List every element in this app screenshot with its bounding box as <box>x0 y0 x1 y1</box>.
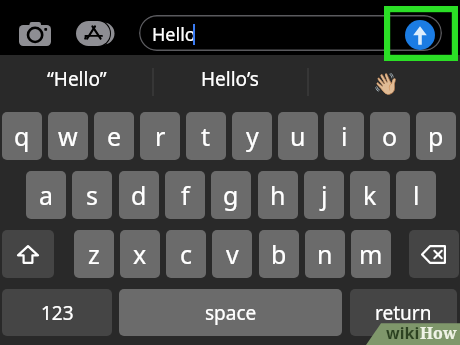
staticText: wiki <box>386 322 420 344</box>
staticText: b <box>271 237 287 271</box>
staticText: space <box>205 300 257 326</box>
button[interactable]: o <box>370 112 410 160</box>
staticText: return <box>375 300 432 326</box>
button[interactable]: App Store <box>72 18 119 49</box>
button[interactable]: d <box>119 171 159 219</box>
staticText: l <box>413 178 420 212</box>
button[interactable]: q <box>2 112 42 160</box>
staticText: 123 <box>41 300 74 326</box>
button[interactable]: p <box>416 112 456 160</box>
staticText: y <box>246 119 259 153</box>
staticText: s <box>86 178 98 212</box>
button[interactable]: f <box>165 171 205 219</box>
staticText: d <box>131 178 147 212</box>
button[interactable]: Shift <box>2 230 54 278</box>
button[interactable]: x <box>120 230 160 278</box>
button[interactable]: y <box>232 112 272 160</box>
staticText: u <box>290 119 306 153</box>
button[interactable]: g <box>211 171 251 219</box>
staticText: i <box>341 119 348 153</box>
button[interactable]: c <box>166 230 206 278</box>
button[interactable]: j <box>304 171 344 219</box>
staticText: e <box>107 119 122 153</box>
button[interactable]: k <box>350 171 390 219</box>
staticText: a <box>39 178 54 212</box>
button[interactable]: v <box>212 230 252 278</box>
button[interactable]: “Hello” <box>0 55 153 103</box>
staticText: j <box>321 178 328 212</box>
button[interactable]: t <box>186 112 226 160</box>
button[interactable]: w <box>48 112 88 160</box>
staticText: “Hello” <box>47 66 107 92</box>
staticText: g <box>223 178 239 212</box>
staticText: Hello <box>152 22 196 47</box>
button[interactable]: i <box>324 112 364 160</box>
button[interactable]: n <box>305 230 345 278</box>
staticText: c <box>180 237 193 271</box>
button[interactable]: Send <box>405 20 435 50</box>
staticText: o <box>382 119 398 153</box>
button[interactable]: s <box>72 171 112 219</box>
staticText: r <box>155 119 166 153</box>
button[interactable]: m <box>351 230 391 278</box>
staticText: h <box>270 178 286 212</box>
staticText: f <box>181 178 190 212</box>
button[interactable]: Camera <box>14 17 55 50</box>
button[interactable]: z <box>74 230 114 278</box>
staticText: m <box>359 237 383 271</box>
button[interactable]: r <box>140 112 180 160</box>
button[interactable]: Hello <box>139 15 442 51</box>
button[interactable]: Backspace <box>409 230 459 278</box>
staticText: How <box>420 322 457 344</box>
staticText: 👋🏼 <box>373 72 400 97</box>
staticText: v <box>226 237 239 271</box>
button[interactable]: 123 <box>2 289 112 336</box>
button[interactable]: u <box>278 112 318 160</box>
button[interactable]: b <box>259 230 299 278</box>
button[interactable]: h <box>258 171 298 219</box>
staticText: q <box>14 119 30 153</box>
button[interactable]: Waving hand emoji <box>307 55 460 103</box>
button[interactable]: return <box>350 289 457 336</box>
staticText: w <box>58 119 78 153</box>
button[interactable]: l <box>396 171 436 219</box>
staticText: k <box>363 178 377 212</box>
button[interactable]: space <box>119 289 342 336</box>
staticText: z <box>88 237 100 271</box>
staticText: n <box>317 237 333 271</box>
staticText: Hello’s <box>201 66 259 92</box>
staticText: p <box>428 119 444 153</box>
button[interactable]: a <box>26 171 66 219</box>
staticText: t <box>201 119 211 153</box>
button[interactable]: Hello’s <box>153 55 307 103</box>
staticText: x <box>133 237 147 271</box>
button[interactable]: e <box>94 112 134 160</box>
